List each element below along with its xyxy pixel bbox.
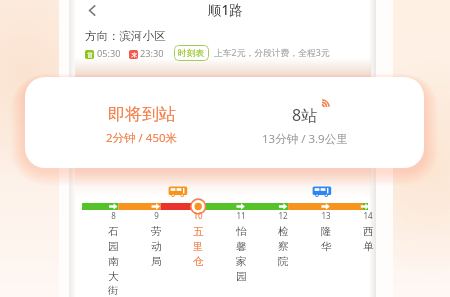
staticText: 上车2元，分段计费，全程3元	[214, 47, 330, 59]
staticText: 大	[108, 270, 119, 283]
button[interactable]: 时刻表	[174, 45, 209, 61]
staticText: 13	[321, 210, 331, 221]
staticText: 时刻表	[178, 48, 205, 59]
staticText: 首	[87, 51, 93, 59]
staticText: 华	[321, 240, 332, 253]
button[interactable]: Back	[84, 2, 101, 19]
staticText: 即将到站	[108, 104, 176, 125]
staticText: 检	[278, 225, 289, 238]
staticText: 劳	[151, 225, 162, 238]
staticText: 10	[193, 210, 203, 221]
staticText: 馨	[236, 240, 247, 253]
staticText: 05:30	[97, 47, 121, 60]
staticText: 方向：滨河小区	[85, 29, 166, 43]
button[interactable]: 9	[136, 210, 176, 297]
staticText: 五	[193, 225, 204, 238]
button[interactable]: 10	[178, 210, 218, 297]
staticText: 末	[131, 51, 137, 59]
staticText: 23:30	[140, 47, 164, 60]
staticText: 园	[236, 270, 247, 283]
staticText: 13分钟 / 3.9公里	[262, 131, 348, 147]
staticText: 12	[278, 210, 288, 221]
staticText: 14	[363, 210, 373, 221]
staticText: 9	[154, 210, 159, 221]
staticText: 家	[236, 255, 247, 268]
staticText: 怡	[236, 225, 247, 238]
staticText: 南	[108, 255, 119, 268]
staticText: 11	[236, 210, 246, 221]
button[interactable]: 11	[221, 210, 261, 297]
staticText: 隆	[321, 225, 332, 238]
button[interactable]: 13	[306, 210, 346, 297]
staticText: 8	[111, 210, 116, 221]
staticText: 园	[108, 240, 119, 253]
staticText: 石	[108, 225, 119, 238]
staticText: 单	[363, 240, 374, 253]
staticText: 8站	[292, 104, 318, 126]
staticText: 里	[193, 240, 204, 253]
button[interactable]: 8	[93, 210, 133, 297]
staticText: 西	[363, 225, 374, 238]
staticText: 2分钟 / 450米	[106, 130, 178, 146]
button[interactable]: 12	[263, 210, 303, 297]
staticText: 局	[151, 255, 162, 268]
button[interactable]: 即将到站	[25, 77, 424, 168]
staticText: 动	[151, 240, 162, 253]
staticText: 察	[278, 240, 289, 253]
staticText: 顺1路	[208, 1, 243, 19]
button[interactable]: 14	[348, 210, 388, 297]
staticText: 街	[108, 284, 119, 297]
staticText: 院	[278, 255, 289, 268]
staticText: 仓	[193, 255, 204, 268]
